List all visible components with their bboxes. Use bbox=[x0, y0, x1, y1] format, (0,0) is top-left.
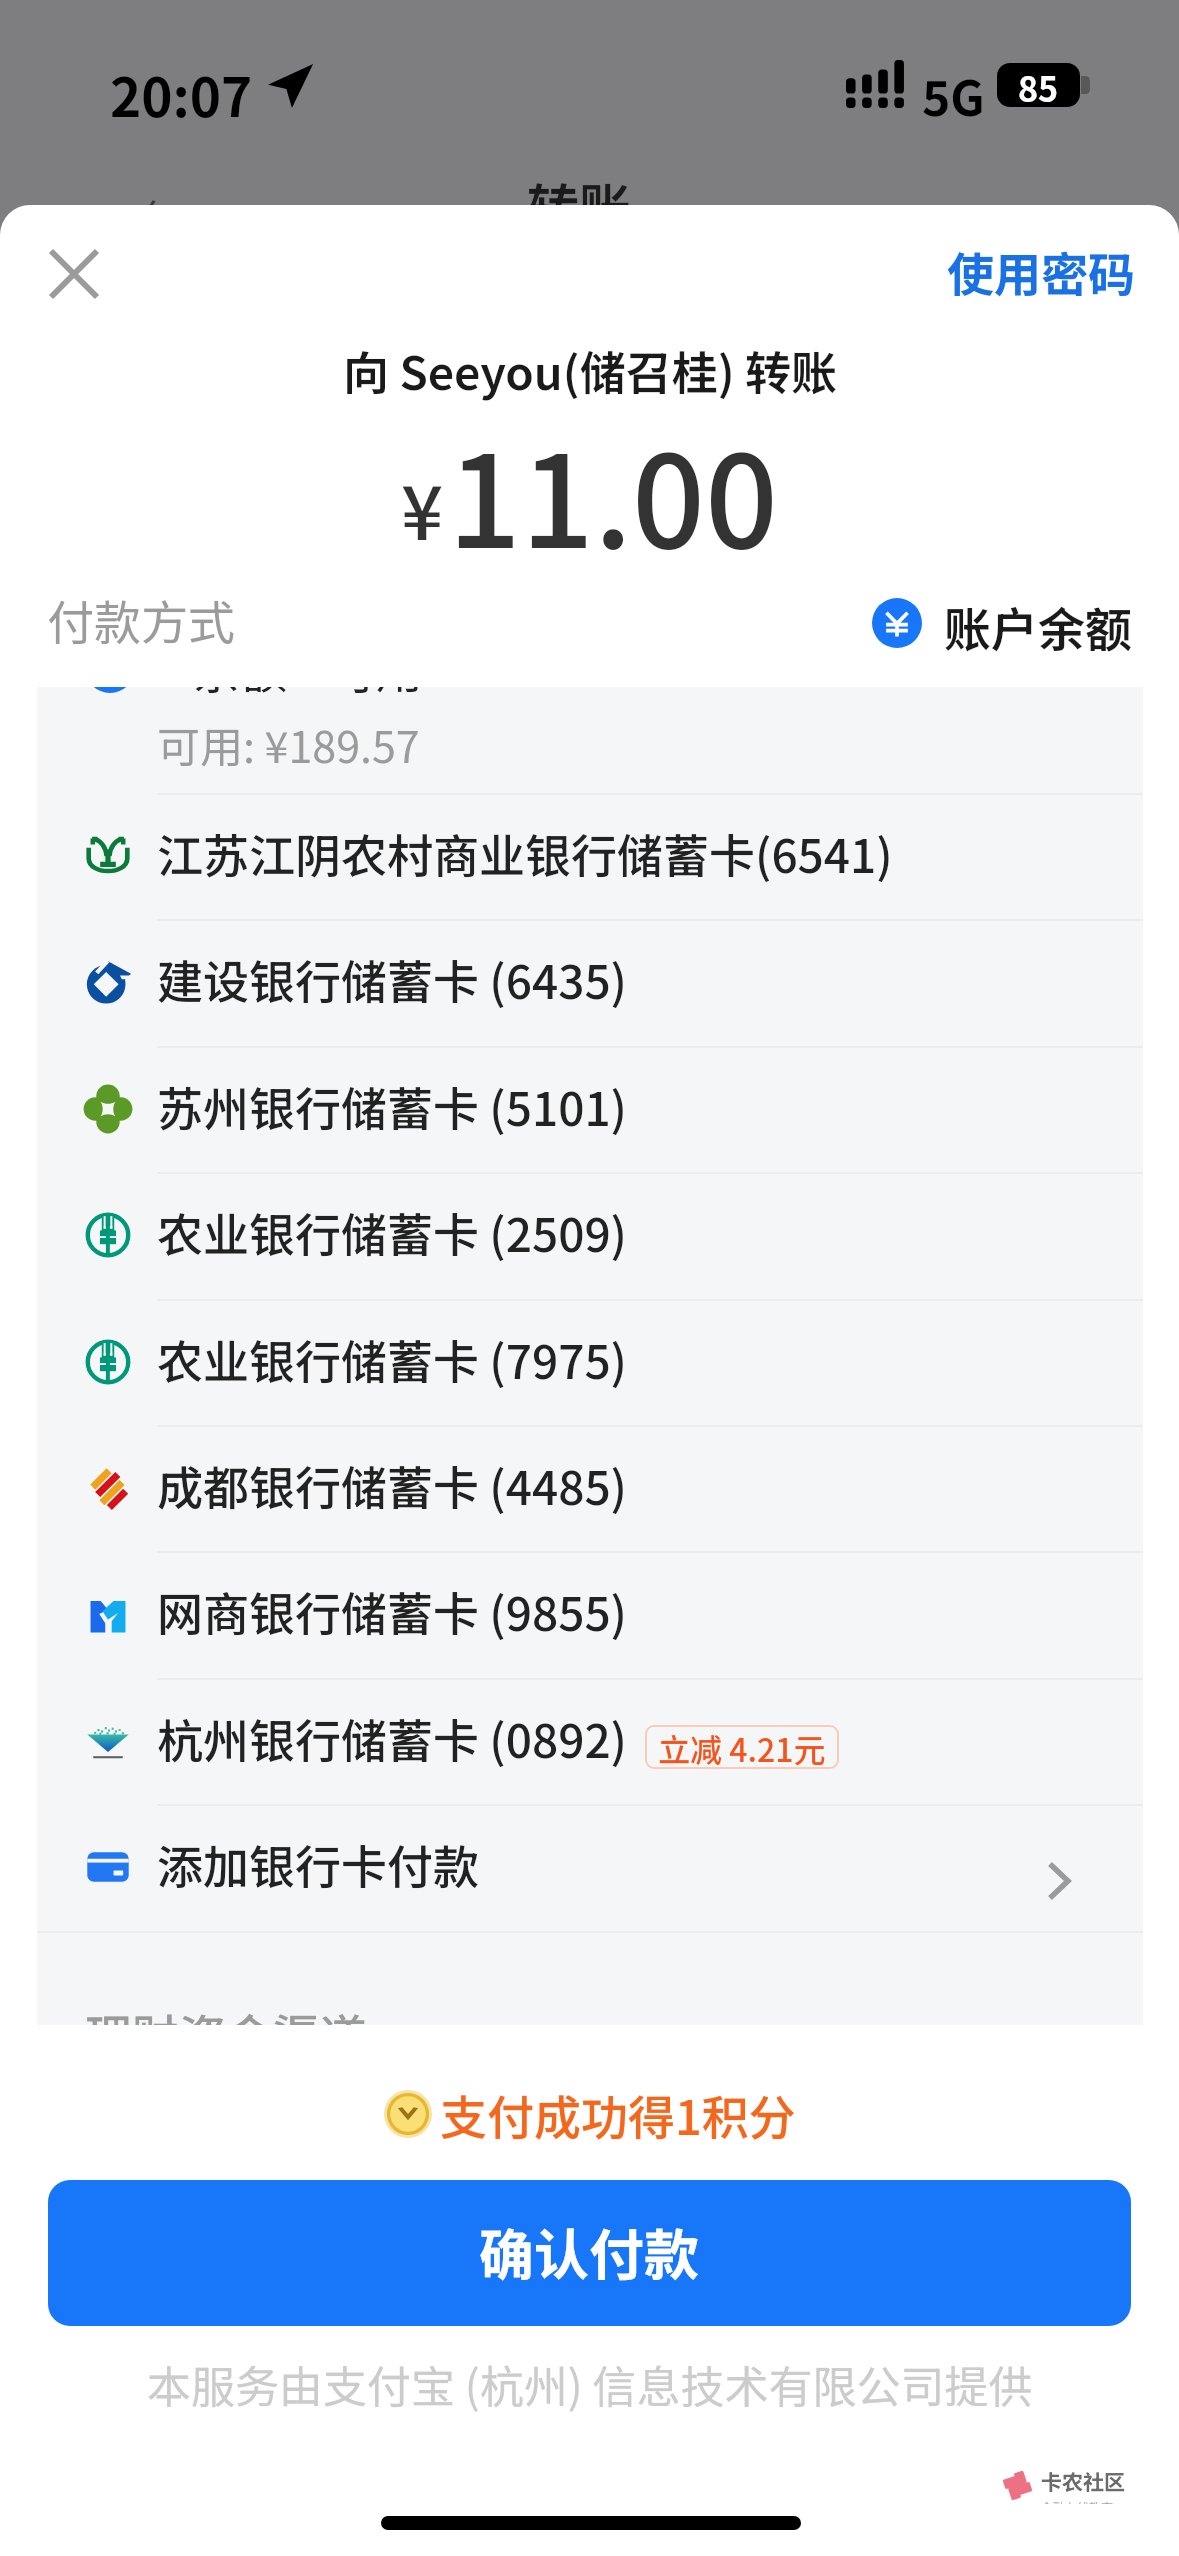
staticText: 〈 bbox=[112, 186, 158, 253]
staticText: 杭州银行储蓄卡 (0892) bbox=[157, 1705, 627, 1772]
staticText: 转账 bbox=[527, 167, 632, 242]
staticText: 向 Seeyou(储召桂) 转账 bbox=[343, 337, 837, 404]
button[interactable]: 网商银行储蓄卡 (9855) bbox=[37, 1551, 1143, 1677]
button[interactable]: 成都银行储蓄卡 (4485) bbox=[37, 1425, 1143, 1551]
staticText: 理财资金渠道 bbox=[85, 1999, 367, 2025]
staticText: 卡农社区 bbox=[1041, 2466, 1125, 2496]
button[interactable]: 添加银行卡付款 bbox=[37, 1804, 1143, 1930]
staticText: 可用: ¥189.57 bbox=[157, 713, 420, 775]
staticText: 添加银行卡付款 bbox=[157, 1831, 479, 1898]
staticText: 苏州银行储蓄卡 (5101) bbox=[157, 1073, 627, 1140]
button[interactable]: 建设银行储蓄卡 (6435) bbox=[37, 919, 1143, 1045]
staticText: 余额 可用 bbox=[193, 687, 424, 702]
staticText: ¥ bbox=[401, 454, 444, 561]
staticText: 建设银行储蓄卡 (6435) bbox=[157, 946, 627, 1013]
staticText: 账户余额 bbox=[944, 592, 1132, 654]
button[interactable]: 农业银行储蓄卡 (2509) bbox=[37, 1172, 1143, 1298]
staticText: 立减 4.21元 bbox=[658, 1725, 826, 1769]
staticText: 付款方式 bbox=[47, 585, 235, 653]
staticText: 金融在线教育 bbox=[1041, 2498, 1114, 2504]
staticText: 20:07 bbox=[110, 56, 253, 133]
button[interactable]: Close bbox=[32, 232, 116, 316]
staticText: 本服务由支付宝 (杭州) 信息技术有限公司提供 bbox=[147, 2352, 1033, 2416]
staticText: ··· bbox=[1002, 176, 1159, 251]
staticText: 农业银行储蓄卡 (7975) bbox=[157, 1326, 627, 1393]
staticText: 支付成功得1积分 bbox=[440, 2080, 796, 2142]
staticText: 网商银行储蓄卡 (9855) bbox=[157, 1578, 627, 1645]
staticText: 成都银行储蓄卡 (4485) bbox=[157, 1452, 627, 1519]
staticText: 确认付款 bbox=[479, 2211, 700, 2291]
button[interactable]: 苏州银行储蓄卡 (5101) bbox=[37, 1046, 1143, 1172]
staticText: 85 bbox=[1018, 63, 1059, 107]
button[interactable]: 账户余额 bbox=[866, 584, 1136, 662]
button[interactable]: 农业银行储蓄卡 (7975) bbox=[37, 1299, 1143, 1425]
staticText: 使用密码 bbox=[947, 237, 1135, 305]
staticText: 5G bbox=[922, 60, 985, 130]
button[interactable]: 确认付款 bbox=[48, 2180, 1131, 2326]
staticText: 11.00 bbox=[448, 400, 778, 585]
button[interactable]: 江苏江阴农村商业银行储蓄卡(6541) bbox=[37, 793, 1143, 919]
button[interactable]: 杭州银行储蓄卡 (0892) bbox=[37, 1678, 1143, 1804]
staticText: 江苏江阴农村商业银行储蓄卡(6541) bbox=[157, 820, 893, 887]
staticText: 农业银行储蓄卡 (2509) bbox=[157, 1199, 627, 1266]
button[interactable]: 使用密码 bbox=[932, 235, 1150, 307]
